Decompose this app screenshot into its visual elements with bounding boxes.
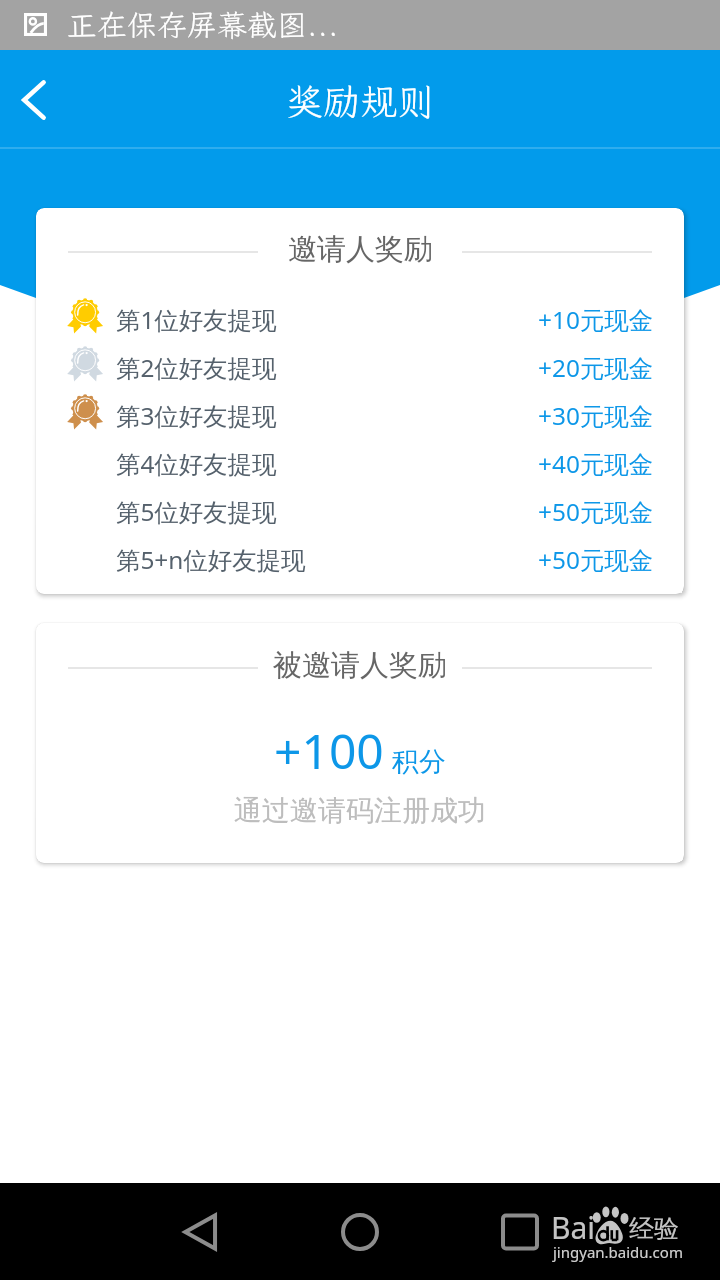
button[interactable]: 第5位好友提现	[36, 487, 684, 535]
staticText: 第5位好友提现	[116, 495, 277, 528]
staticText: +50元现金	[538, 495, 654, 528]
staticText: +30元现金	[538, 399, 654, 432]
staticText: jingyan.baidu.com	[553, 1242, 683, 1262]
other: Screenshot saving	[24, 13, 48, 37]
button[interactable]: 第1位好友提现	[36, 295, 684, 343]
staticText: +10元现金	[538, 303, 654, 336]
staticText: +100	[274, 718, 384, 783]
button[interactable]: Back	[0, 50, 66, 149]
staticText: 被邀请人奖励	[273, 647, 447, 684]
staticText: 积分	[392, 745, 446, 779]
staticText: 第1位好友提现	[116, 303, 277, 336]
button[interactable]: 第4位好友提现	[36, 439, 684, 487]
button[interactable]: 第5+n位好友提现	[36, 535, 684, 583]
staticText: 邀请人奖励	[288, 231, 433, 268]
staticText: 正在保存屏幕截图...	[67, 5, 339, 45]
button[interactable]: 第3位好友提现	[36, 391, 684, 439]
staticText: +40元现金	[538, 447, 654, 480]
staticText: 经验	[629, 1213, 679, 1244]
button[interactable]: Recent apps	[480, 1183, 560, 1280]
staticText: +50元现金	[538, 543, 654, 576]
button[interactable]: Home	[320, 1183, 400, 1280]
staticText: Bai	[551, 1207, 596, 1247]
staticText: 第3位好友提现	[116, 399, 277, 432]
staticText: 第5+n位好友提现	[116, 543, 306, 576]
staticText: +20元现金	[538, 351, 654, 384]
staticText: 奖励规则	[286, 77, 434, 126]
button[interactable]: 第2位好友提现	[36, 343, 684, 391]
staticText: 第4位好友提现	[116, 447, 277, 480]
staticText: 通过邀请码注册成功	[234, 793, 486, 828]
button[interactable]: Back	[160, 1183, 240, 1280]
staticText: 第2位好友提现	[116, 351, 277, 384]
other: Baidu	[592, 1206, 632, 1246]
